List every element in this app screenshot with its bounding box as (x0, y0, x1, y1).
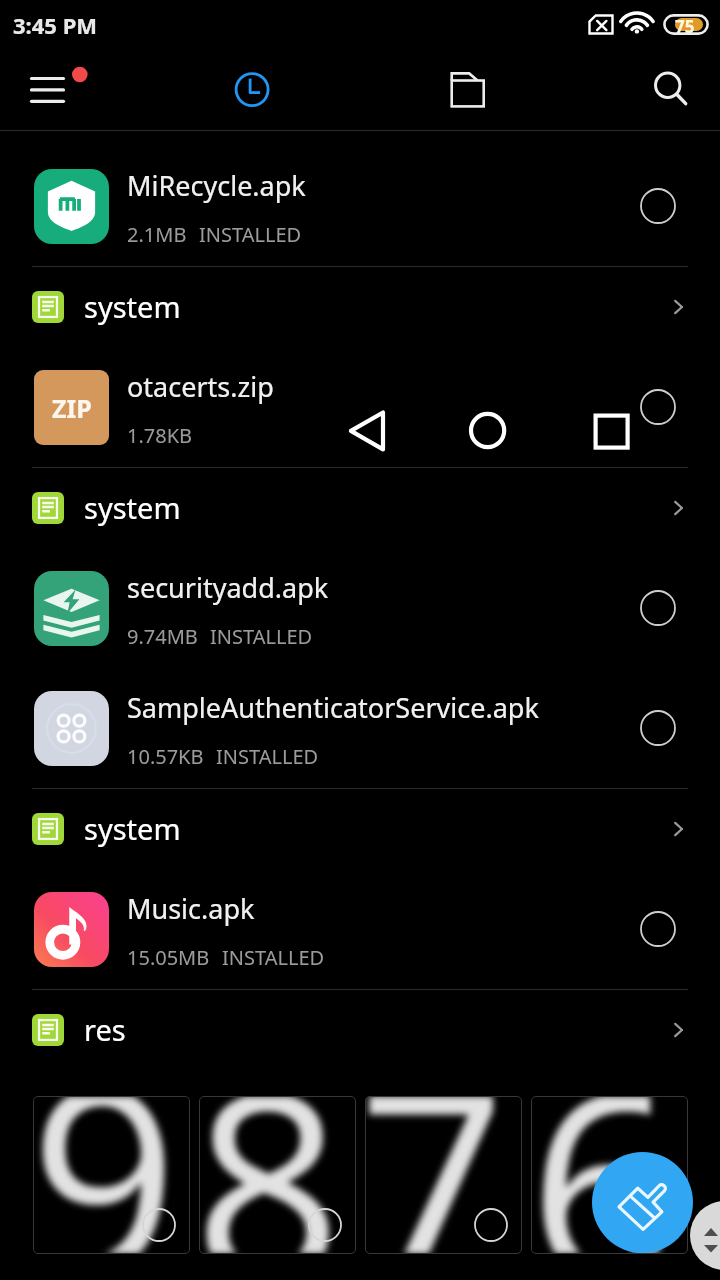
staticText: 8 (199, 1096, 342, 1254)
staticText: 7 (365, 1096, 506, 1254)
staticText: 9.74MB (127, 623, 198, 650)
button[interactable]: Select (632, 381, 684, 433)
staticText: 15.05MB (127, 944, 210, 971)
staticText: ZIP (52, 391, 92, 425)
staticText: otacerts.zip (127, 368, 274, 405)
button[interactable]: SampleAuthenticatorService.apk (0, 668, 720, 788)
button[interactable]: Select (632, 180, 684, 232)
button[interactable]: res (0, 990, 720, 1070)
button[interactable]: system (0, 267, 720, 347)
button[interactable]: Folders (440, 61, 496, 117)
staticText: 3:45 PM (13, 10, 98, 40)
staticText: INSTALLED (222, 944, 325, 971)
button[interactable]: Menu (20, 61, 76, 117)
staticText: 9 (33, 1096, 178, 1254)
staticText: INSTALLED (199, 221, 302, 248)
button[interactable]: Music.apk (0, 869, 720, 989)
button[interactable]: Select (632, 903, 684, 955)
staticText: system (84, 488, 664, 527)
staticText: 6 (531, 1096, 677, 1254)
button[interactable]: Home (462, 405, 514, 457)
button[interactable]: Photo (199, 1096, 356, 1254)
button[interactable]: Edit (592, 1152, 693, 1253)
staticText: 75 (675, 15, 695, 38)
button[interactable]: system (0, 468, 720, 548)
staticText: INSTALLED (210, 623, 313, 650)
button[interactable]: Photo (365, 1096, 522, 1254)
staticText: MiRecycle.apk (127, 167, 306, 204)
staticText: 2.1MB (127, 221, 187, 248)
button[interactable]: Search (640, 61, 696, 117)
staticText: Music.apk (127, 890, 255, 927)
button[interactable]: system (0, 789, 720, 869)
staticText: 1.78KB (127, 422, 193, 449)
button[interactable]: Select (632, 582, 684, 634)
button[interactable]: Recent (224, 61, 280, 117)
button[interactable]: Back (343, 405, 395, 457)
staticText: SampleAuthenticatorService.apk (127, 689, 539, 726)
staticText: system (84, 287, 664, 326)
button[interactable]: ZIP (0, 347, 720, 467)
button[interactable]: Scroll (690, 1201, 720, 1270)
button[interactable]: MiRecycle.apk (0, 146, 720, 266)
staticText: 10.57KB (127, 743, 204, 770)
button[interactable]: Select (632, 702, 684, 754)
button[interactable]: Photo (531, 1096, 688, 1254)
staticText: system (84, 809, 664, 848)
button[interactable]: Recents (589, 405, 641, 457)
staticText: res (84, 1010, 664, 1049)
staticText: INSTALLED (216, 743, 319, 770)
staticText: securityadd.apk (127, 569, 329, 606)
button[interactable]: securityadd.apk (0, 548, 720, 668)
button[interactable]: Photo (33, 1096, 190, 1254)
